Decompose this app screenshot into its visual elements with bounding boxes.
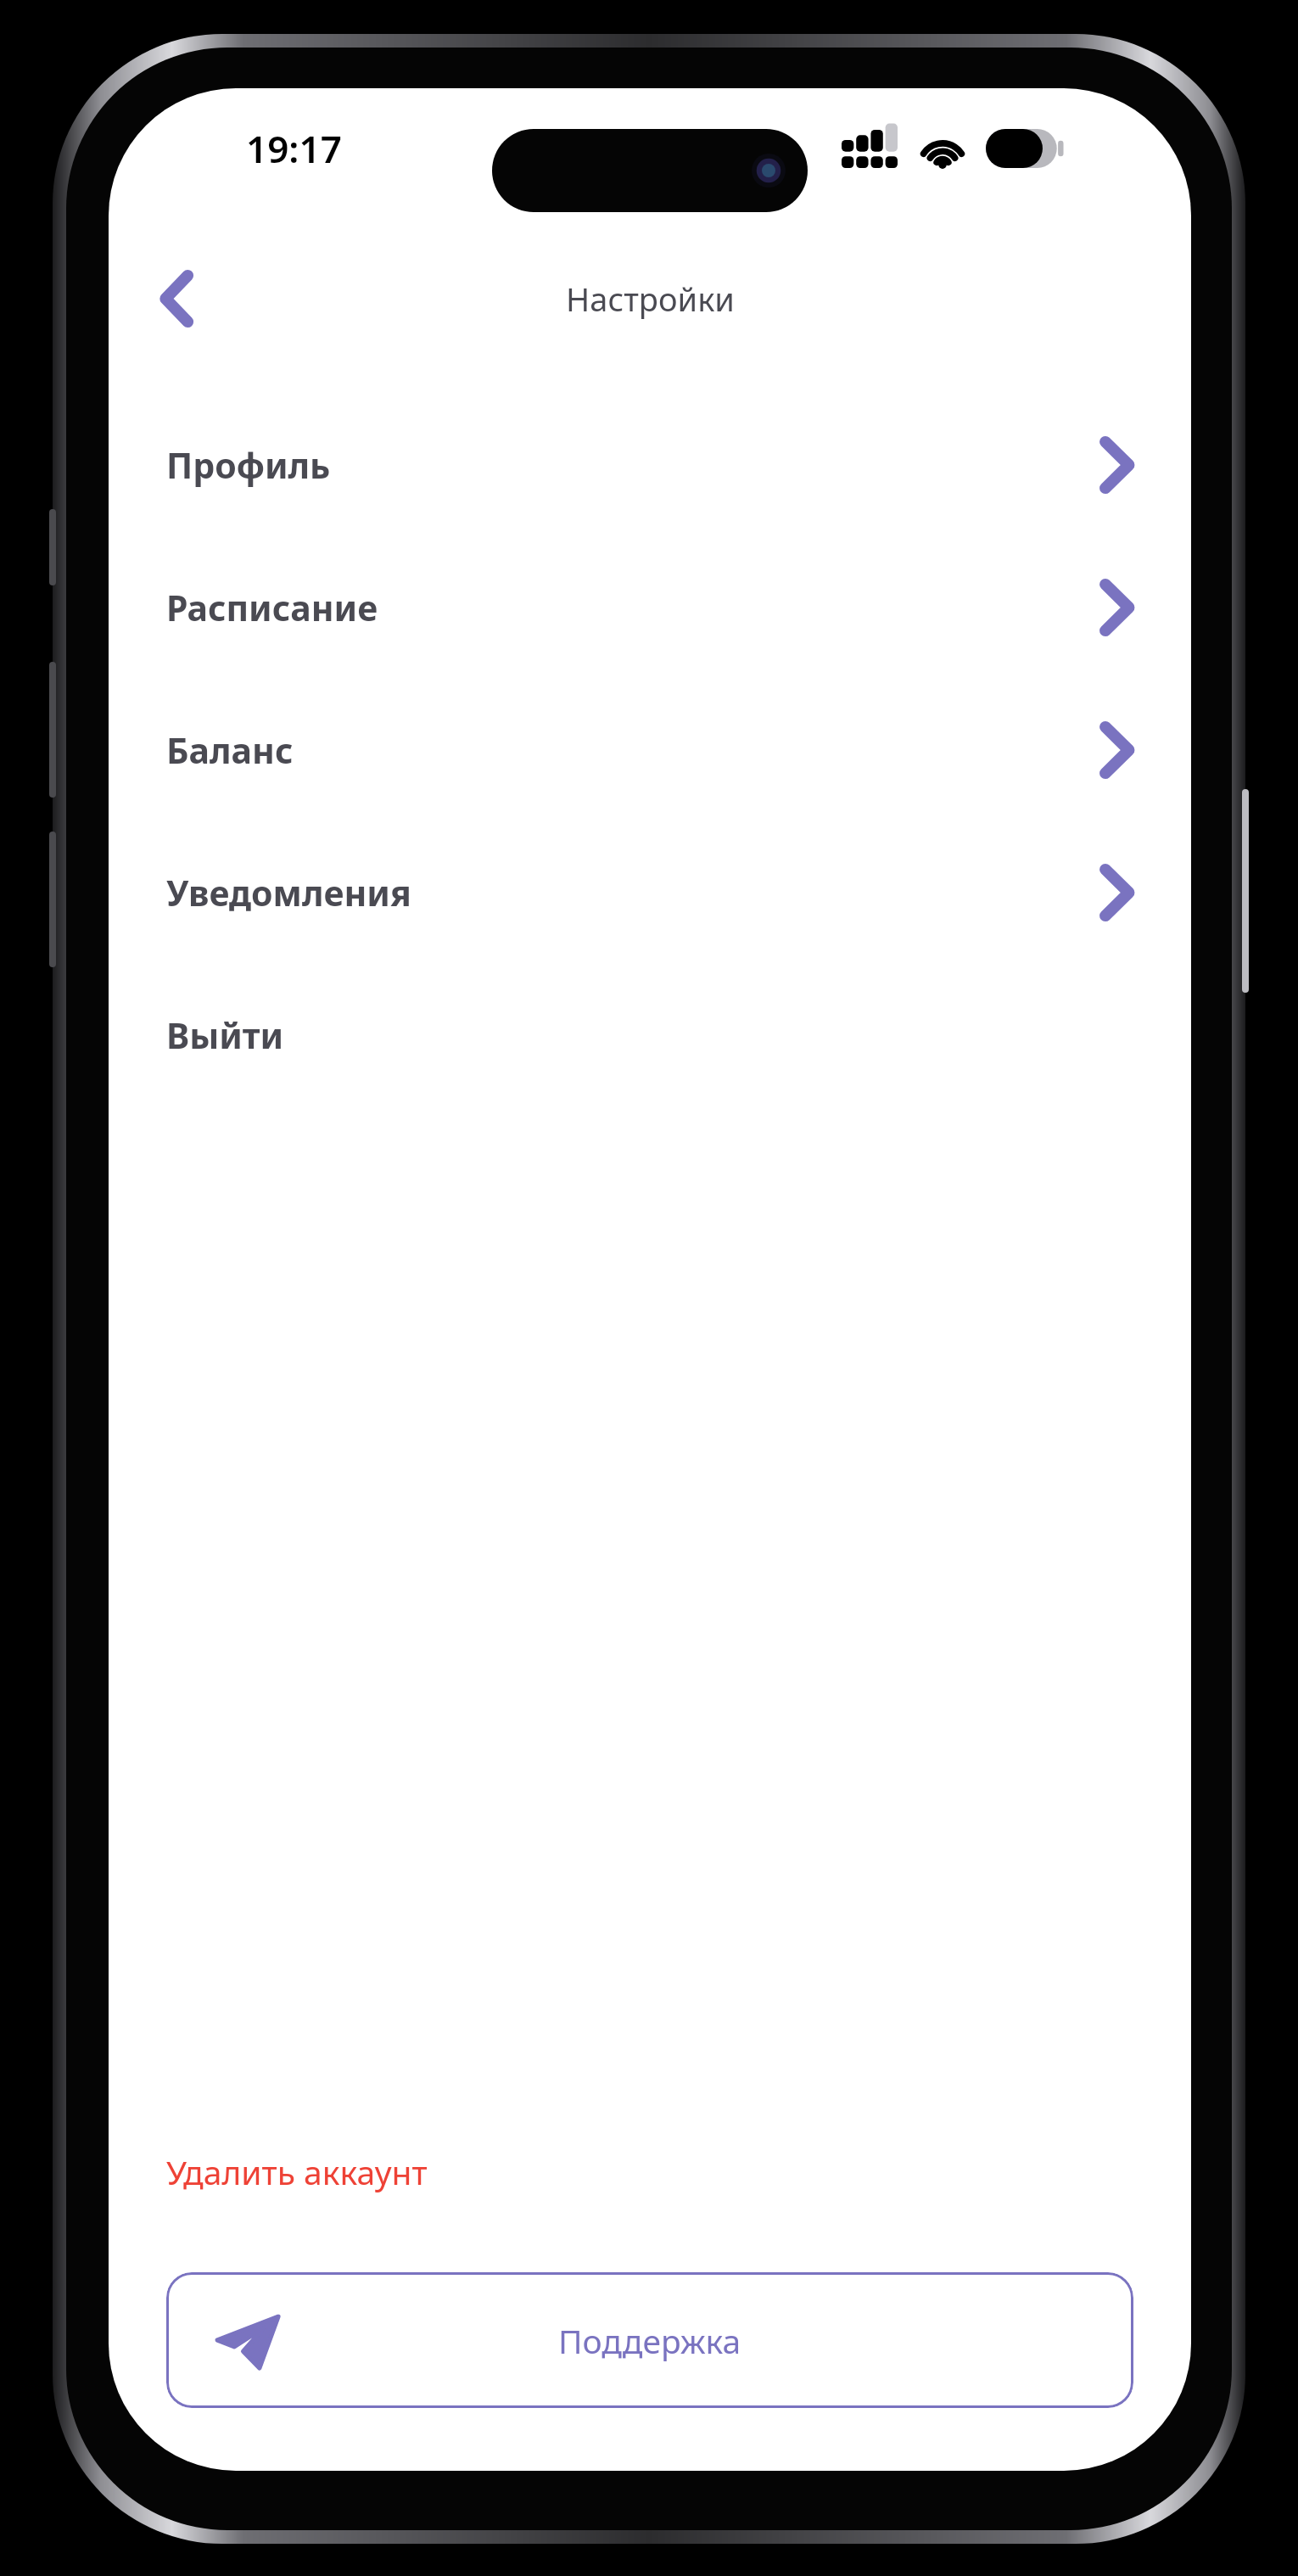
staticText: Расписание [166, 584, 378, 631]
button[interactable]: Назад [139, 263, 210, 334]
button[interactable]: Расписание [109, 536, 1191, 679]
staticText: Удалить аккаунт [166, 2149, 428, 2194]
button[interactable]: Уведомления [109, 821, 1191, 964]
staticText: Выйти [166, 1011, 284, 1059]
button[interactable]: Баланс [109, 679, 1191, 821]
button[interactable]: Выйти [109, 964, 1191, 1106]
button[interactable]: Профиль [109, 394, 1191, 536]
staticText: Настройки [566, 277, 735, 321]
staticText: 19:17 [246, 123, 342, 174]
staticText: Поддержка [558, 2318, 741, 2363]
staticText: Уведомления [166, 869, 411, 916]
staticText: Баланс [166, 726, 294, 774]
staticText: Профиль [166, 441, 331, 489]
button[interactable]: Поддержка [166, 2272, 1133, 2408]
button[interactable]: Удалить аккаунт [109, 2137, 1191, 2206]
